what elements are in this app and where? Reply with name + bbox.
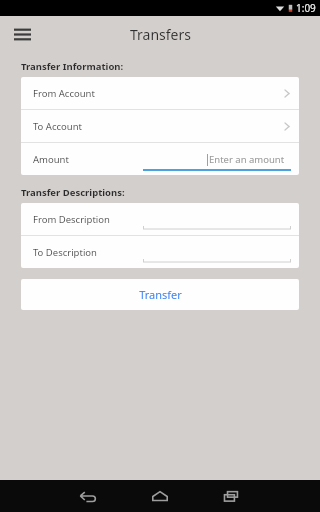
staticText: To Description bbox=[33, 246, 97, 259]
staticText: Transfer Descriptions: bbox=[21, 186, 125, 199]
staticText: Amount bbox=[33, 153, 69, 166]
button[interactable]: Recent apps bbox=[204, 480, 260, 512]
button[interactable]: From Account bbox=[21, 77, 299, 109]
button[interactable]: Back bbox=[60, 480, 116, 512]
button[interactable]: Open navigation menu bbox=[6, 18, 38, 50]
staticText: Transfer bbox=[139, 287, 182, 302]
button[interactable]: To Description bbox=[21, 236, 299, 268]
staticText: 1:09 bbox=[296, 1, 316, 15]
button[interactable]: Home bbox=[132, 480, 188, 512]
staticText: Transfers bbox=[130, 25, 191, 44]
staticText: From Description bbox=[33, 213, 110, 226]
button[interactable]: From Description bbox=[21, 203, 299, 235]
staticText: From Account bbox=[33, 87, 95, 100]
staticText: Transfer Information: bbox=[21, 60, 124, 73]
staticText: To Account bbox=[33, 120, 82, 133]
button[interactable]: Amount bbox=[21, 143, 299, 175]
button[interactable]: To Account bbox=[21, 110, 299, 142]
button[interactable]: Transfer bbox=[21, 279, 299, 310]
staticText: Enter an amount bbox=[209, 153, 285, 166]
